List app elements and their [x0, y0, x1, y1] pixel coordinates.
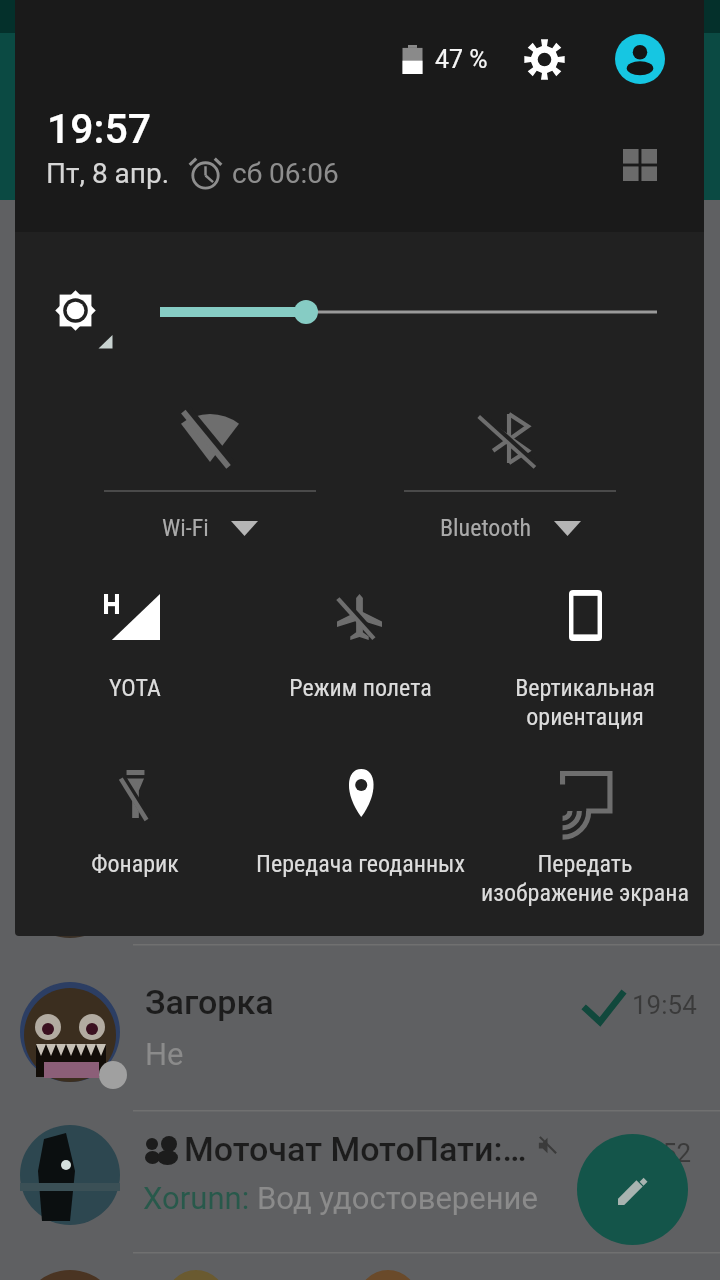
staticText: Режим полета	[289, 674, 432, 702]
staticText: Пт, 8 апр.	[46, 157, 170, 190]
staticText: Wi-Fi	[162, 514, 209, 542]
button[interactable]: Brightness	[40, 277, 124, 361]
staticText: Bluetooth	[440, 514, 532, 542]
button[interactable]: Моточат МотоПати:…	[0, 1112, 720, 1252]
staticText: YOTA	[109, 674, 161, 702]
button[interactable]: Wi-Fi	[80, 396, 340, 551]
staticText: 47 %	[435, 45, 488, 74]
staticText: Фонарик	[91, 850, 179, 878]
button[interactable]: New chat	[577, 1134, 688, 1245]
button[interactable]: Передать изображение экрана	[473, 749, 697, 909]
button[interactable]: Settings	[514, 29, 575, 90]
staticText: 19:57	[47, 105, 152, 153]
staticText: Xorunn:	[143, 1180, 257, 1216]
button[interactable]: Фонарик	[23, 748, 247, 908]
button[interactable]: Режим полета	[248, 572, 472, 732]
button[interactable]: Вертикальная ориентация	[473, 568, 697, 728]
staticText: Моточат МотоПати:…	[184, 1129, 527, 1169]
button[interactable]: YOTA	[23, 572, 247, 732]
staticText: Вод удостоверение	[257, 1180, 538, 1216]
button[interactable]: Edit tiles	[603, 128, 677, 202]
button[interactable]: User profile	[615, 34, 665, 84]
button[interactable]: Bluetooth	[380, 396, 640, 551]
staticText: Загорка	[145, 982, 274, 1022]
staticText: сб 06:06	[232, 157, 339, 190]
staticText: 19:54	[632, 990, 697, 1020]
button[interactable]: Загорка	[0, 946, 720, 1110]
staticText: Не	[145, 1036, 184, 1072]
button[interactable]: Передача геоданных	[248, 747, 472, 907]
staticText: Передать изображение экрана	[481, 850, 689, 907]
staticText: 52	[662, 1138, 692, 1168]
staticText: Передача геоданных	[256, 850, 465, 878]
staticText: Вертикальная ориентация	[515, 674, 655, 731]
